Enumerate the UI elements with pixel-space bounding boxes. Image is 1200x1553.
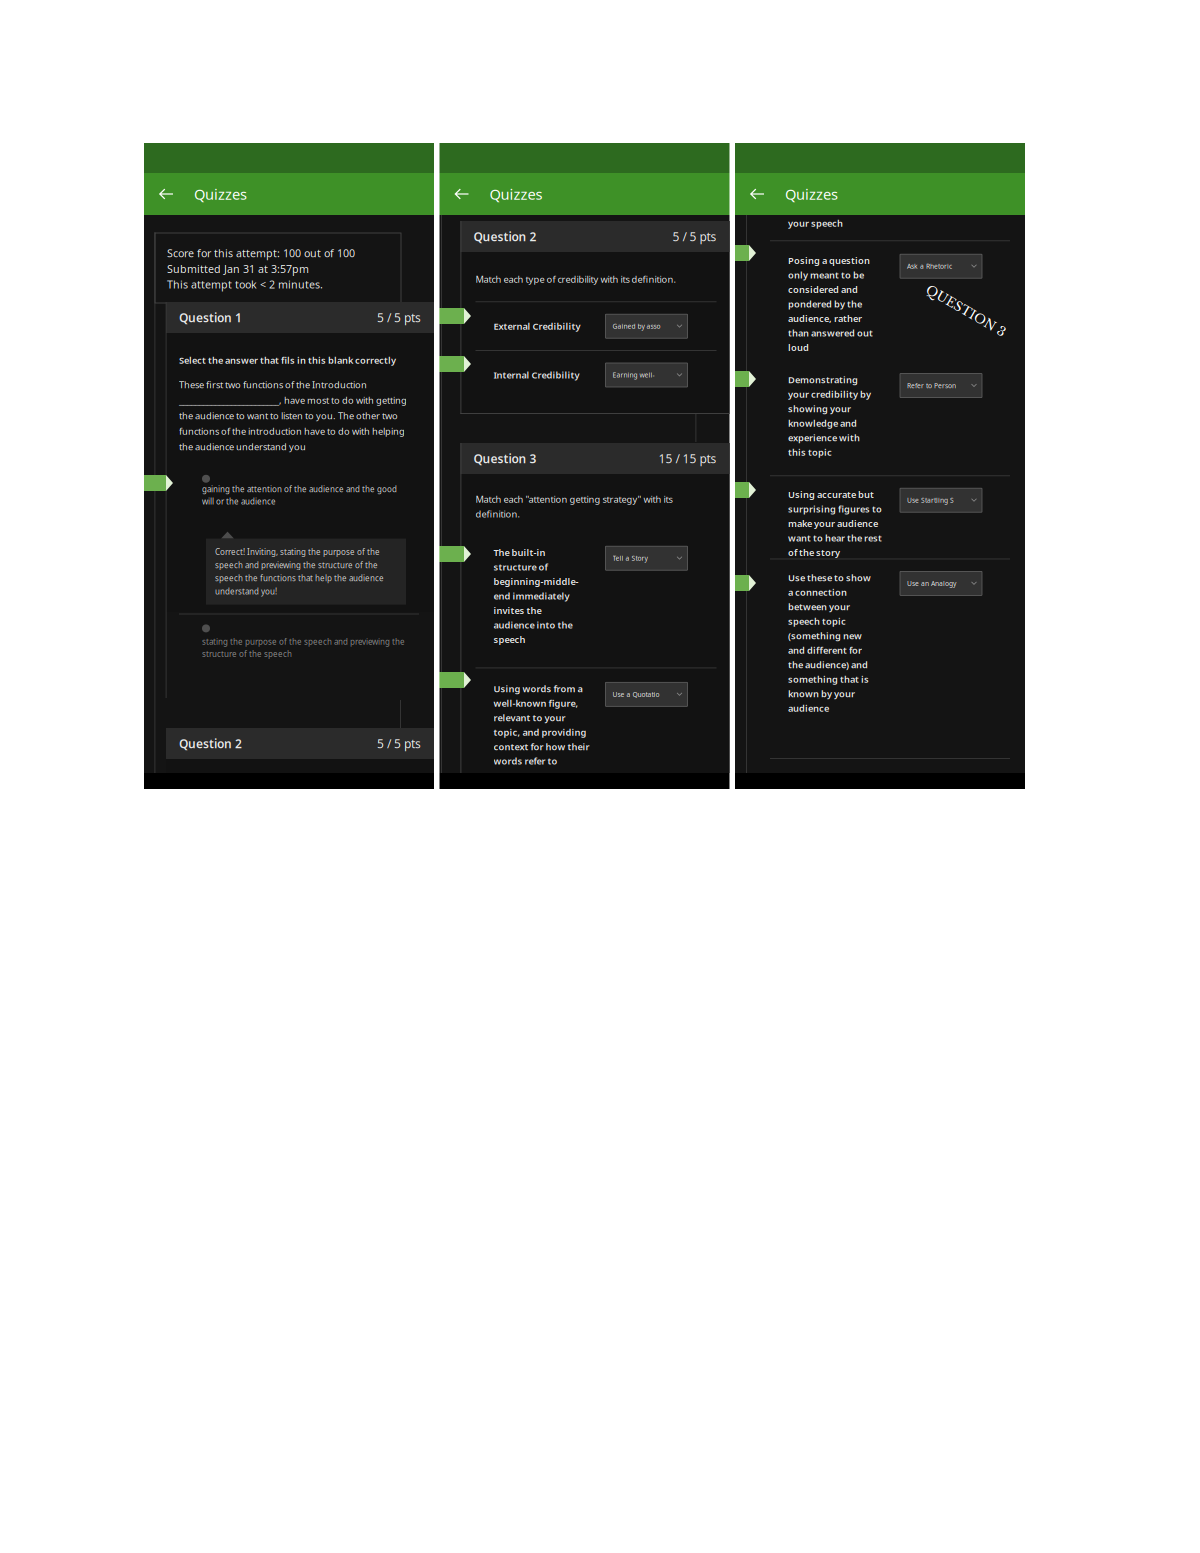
staticText: 5 / 5 pts [377,309,421,325]
button[interactable]: Tell a Story [605,546,687,570]
button[interactable]: Ask a Rhetoric [900,254,982,278]
staticText: Score for this attempt: 100 out of 100 [167,246,355,260]
button[interactable]: Earning well- [605,363,687,387]
button[interactable]: Gained by asso [605,314,687,338]
staticText: These first two functions of the Introdu… [179,378,407,453]
staticText: Tell a Story [612,554,647,563]
staticText: Match each "attention getting strategy" … [475,493,672,520]
staticText: Question 3 [473,450,536,466]
button[interactable]: Use Startling S [900,488,982,512]
staticText: Correct! Inviting, stating the purpose o… [215,547,384,597]
staticText: Question 1 [179,309,242,325]
staticText: Quizzes [489,184,542,204]
staticText: Demonstrating your credibility by showin… [788,373,871,458]
staticText: Question 2 [179,735,242,751]
staticText: 5 / 5 pts [377,735,421,751]
staticText: This attempt took < 2 minutes. [167,277,323,291]
staticText: Earning well- [612,371,654,379]
staticText: Refer to Person [907,381,956,390]
staticText: Internal Credibility [493,369,579,381]
staticText: Posing a question only meant to be consi… [788,254,873,354]
staticText: Question 2 [473,228,536,244]
staticText: Use an Analogy [907,579,956,588]
staticText: Submitted Jan 31 at 3:57pm [167,262,309,276]
button[interactable]: Back [439,173,489,214]
staticText: Gained by asso [612,322,660,331]
button[interactable]: Use an Analogy [900,571,982,595]
staticText: Quizzes [785,184,838,204]
button[interactable]: Use a Quotatio [605,682,687,706]
staticText: Select the answer that fils in this blan… [179,354,396,366]
staticText: your speech [788,217,843,229]
staticText: Use Startling S [907,496,954,505]
button[interactable]: Refer to Person [900,373,982,397]
staticText: Match each type of credibility with its … [475,273,676,285]
staticText: stating the purpose of the speech and pr… [202,636,405,659]
staticText: Using accurate but surprising figures to… [788,488,882,559]
button[interactable]: Back [735,173,785,214]
staticText: Use these to show a connection between y… [788,571,871,714]
button[interactable]: Back [144,173,194,214]
staticText: The built-in structure of beginning-midd… [493,546,578,646]
staticText: Ask a Rhetoric [907,262,952,271]
staticText: Use a Quotatio [612,690,659,699]
staticText: gaining the attention of the audience an… [202,484,397,507]
staticText: Quizzes [194,184,247,204]
staticText: External Credibility [493,320,580,332]
staticText: QUESTION 3 [921,303,1011,319]
staticText: Using words from a well-known figure, re… [493,682,589,767]
staticText: 15 / 15 pts [658,450,716,466]
staticText: 5 / 5 pts [672,228,716,244]
